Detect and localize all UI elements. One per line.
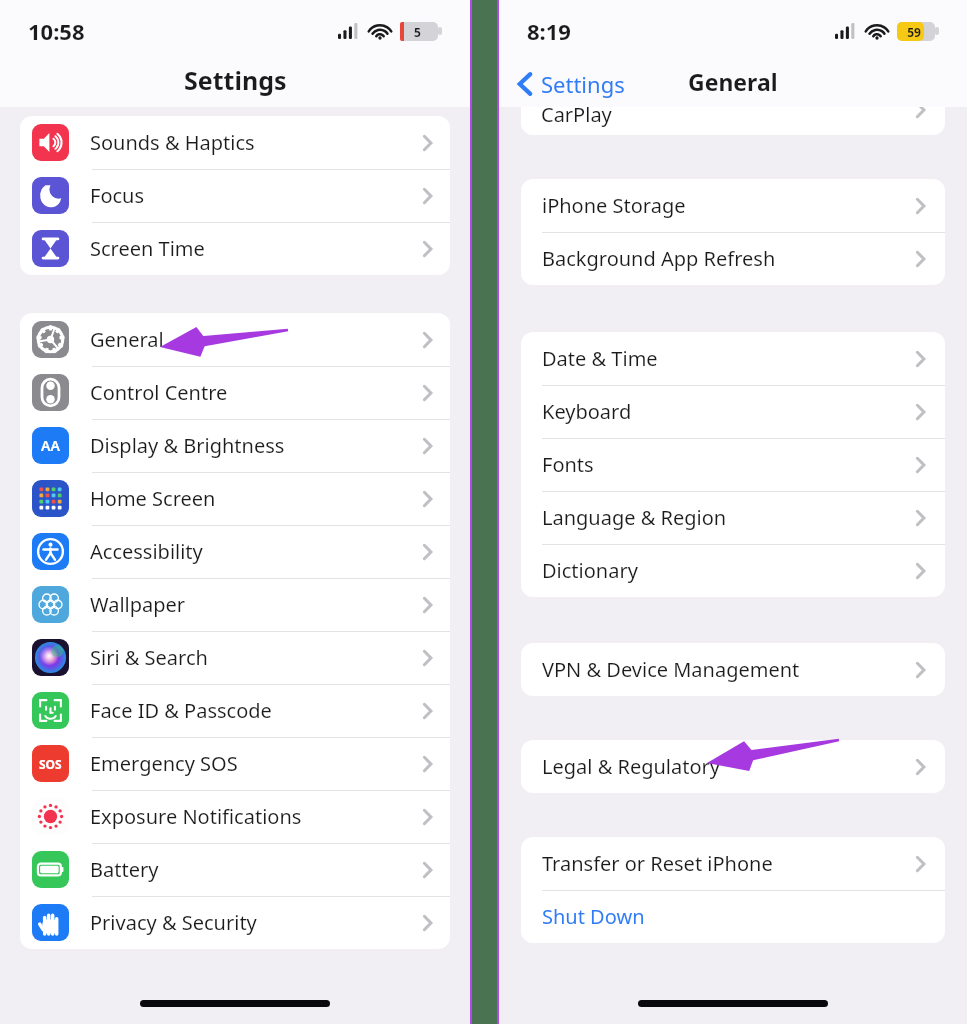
button[interactable]: Keyboard (521, 385, 945, 438)
staticText: Privacy & Security (90, 909, 257, 936)
button[interactable]: Dictionary (521, 544, 945, 597)
staticText: Exposure Notifications (90, 803, 302, 830)
staticText: Face ID & Passcode (90, 697, 272, 724)
button[interactable]: Language & Region (521, 491, 945, 544)
button[interactable]: Date & Time (521, 332, 945, 385)
staticText: General (688, 66, 778, 97)
button[interactable]: Settings (517, 69, 625, 99)
button[interactable]: Legal & Regulatory (521, 740, 945, 793)
staticText: Sounds & Haptics (90, 129, 255, 156)
staticText: 5 (414, 24, 421, 40)
staticText: Background App Refresh (542, 245, 776, 272)
staticText: Home Screen (90, 485, 216, 512)
button[interactable]: iPhone Storage (521, 179, 945, 232)
staticText: Display & Brightness (90, 432, 285, 459)
staticText: Dictionary (542, 557, 638, 584)
staticText: Siri & Search (90, 644, 208, 671)
staticText: Battery (90, 856, 159, 883)
staticText: Wallpaper (90, 591, 186, 618)
button[interactable]: Accessibility (20, 525, 450, 578)
staticText: AA (41, 436, 60, 455)
staticText: Accessibility (90, 538, 203, 565)
staticText: Keyboard (542, 398, 632, 425)
button[interactable]: Privacy & Security (20, 896, 450, 949)
button[interactable]: Shut Down (521, 890, 945, 943)
staticText: Screen Time (90, 235, 205, 262)
button[interactable]: Screen Time (20, 222, 450, 275)
staticText: 59 (907, 24, 921, 40)
button[interactable]: Fonts (521, 438, 945, 491)
staticText: Language & Region (542, 504, 727, 531)
staticText: Shut Down (542, 903, 645, 930)
button[interactable]: Wallpaper (20, 578, 450, 631)
staticText: 10:58 (28, 16, 85, 46)
staticText: iPhone Storage (542, 192, 686, 219)
staticText: Control Centre (90, 379, 228, 406)
staticText: 8:19 (527, 16, 571, 46)
staticText: Fonts (542, 451, 594, 478)
staticText: CarPlay (541, 107, 612, 128)
button[interactable]: VPN & Device Management (521, 643, 945, 696)
staticText: Date & Time (542, 345, 658, 372)
button[interactable]: AA (20, 419, 450, 472)
button[interactable]: Battery (20, 843, 450, 896)
staticText: General (90, 326, 164, 353)
button[interactable]: Siri & Search (20, 631, 450, 684)
button[interactable]: SOS (20, 737, 450, 790)
staticText: Settings (541, 69, 625, 99)
button[interactable]: Control Centre (20, 366, 450, 419)
button[interactable]: Background App Refresh (521, 232, 945, 285)
staticText: Settings (184, 63, 287, 97)
staticText: Focus (90, 182, 145, 209)
button[interactable]: Transfer or Reset iPhone (521, 837, 945, 890)
button[interactable]: Exposure Notifications (20, 790, 450, 843)
button[interactable]: General (20, 313, 450, 366)
staticText: VPN & Device Management (542, 656, 800, 683)
button[interactable]: Home Screen (20, 472, 450, 525)
staticText: Transfer or Reset iPhone (542, 850, 773, 877)
staticText: Emergency SOS (90, 750, 238, 777)
button[interactable]: CarPlay (521, 107, 945, 135)
button[interactable]: Sounds & Haptics (20, 116, 450, 169)
staticText: SOS (39, 756, 62, 772)
staticText: Legal & Regulatory (542, 753, 721, 780)
button[interactable]: Focus (20, 169, 450, 222)
button[interactable]: Face ID & Passcode (20, 684, 450, 737)
